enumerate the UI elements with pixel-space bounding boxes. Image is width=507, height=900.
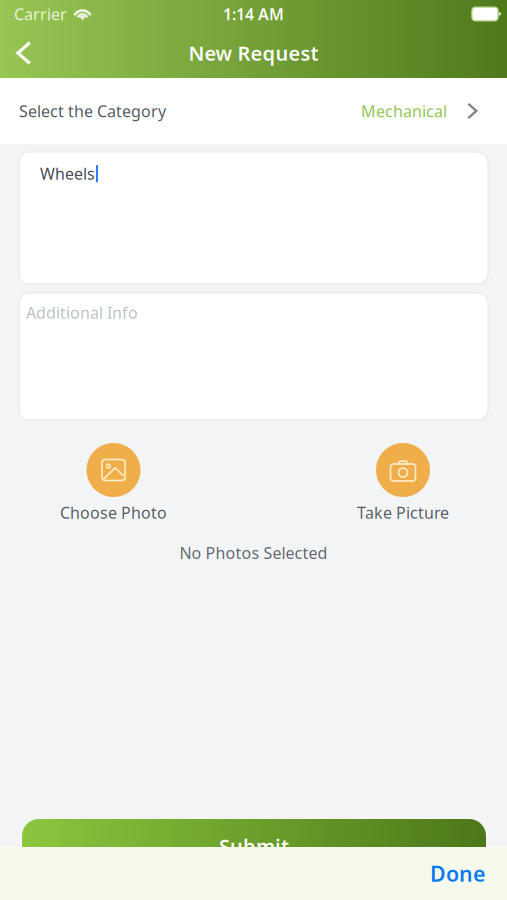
staticText: Mechanical	[361, 100, 447, 122]
staticText: Done	[430, 859, 485, 888]
staticText: Carrier	[14, 3, 67, 25]
staticText: 1:14 AM	[223, 3, 284, 25]
button[interactable]: Choose Photo	[60, 443, 167, 523]
staticText: Additional Info	[26, 302, 138, 323]
button[interactable]: Back	[0, 29, 48, 77]
button[interactable]: Take Picture	[357, 443, 449, 523]
staticText: Select the Category	[19, 100, 166, 122]
button[interactable]: Select the Category	[0, 78, 507, 144]
staticText: Take Picture	[357, 502, 449, 523]
staticText: Submit	[219, 833, 289, 859]
button[interactable]: Done	[408, 847, 507, 900]
staticText: Wheels	[40, 163, 95, 184]
button[interactable]: Submit	[0, 819, 507, 873]
staticText: No Photos Selected	[179, 542, 327, 563]
staticText: Choose Photo	[60, 502, 167, 523]
staticText: New Request	[188, 40, 318, 66]
